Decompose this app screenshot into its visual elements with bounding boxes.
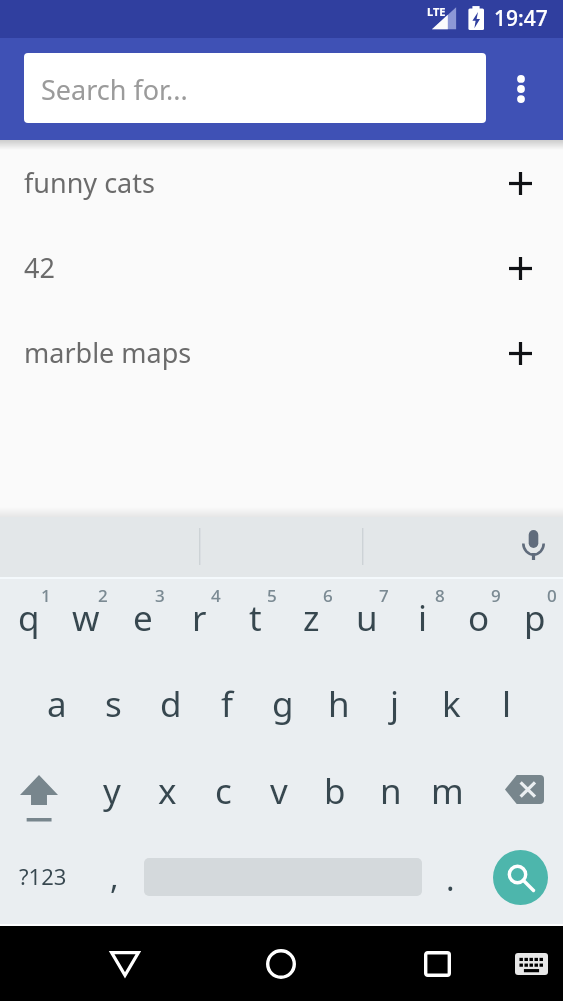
button[interactable]: Switch keyboard	[500, 926, 563, 1001]
staticText: u	[356, 594, 378, 642]
button[interactable]: 1	[0, 577, 57, 664]
button[interactable]: s	[85, 664, 142, 751]
button[interactable]: 42	[0, 225, 563, 310]
button[interactable]: Back	[80, 926, 170, 1001]
button[interactable]: .	[422, 839, 478, 926]
staticText: 0	[547, 584, 557, 607]
staticText: a	[47, 680, 67, 728]
button[interactable]: 3	[114, 577, 171, 664]
staticText: s	[105, 680, 122, 728]
staticText: w	[72, 594, 100, 642]
staticText: b	[324, 767, 346, 815]
button[interactable]: d	[142, 664, 199, 751]
staticText: ,	[110, 855, 119, 899]
button[interactable]: n	[363, 751, 419, 838]
button[interactable]: More options	[478, 38, 563, 140]
button[interactable]: l	[479, 664, 535, 751]
staticText: x	[158, 767, 177, 815]
button[interactable]: Shift	[0, 751, 84, 838]
button[interactable]: Add funny cats to search field	[477, 140, 563, 225]
staticText: LTE	[427, 4, 446, 19]
staticText: z	[303, 594, 320, 642]
staticText: d	[160, 680, 182, 728]
staticText: o	[468, 594, 490, 642]
button[interactable]: a	[28, 664, 85, 751]
staticText: 9	[491, 584, 501, 607]
staticText: p	[524, 594, 546, 642]
button[interactable]: Backspace	[475, 751, 563, 838]
button[interactable]: j	[367, 664, 423, 751]
button[interactable]: Search	[478, 839, 563, 926]
button[interactable]: v	[251, 751, 307, 838]
staticText: f	[221, 680, 234, 728]
button[interactable]: Space	[142, 839, 422, 926]
staticText: 2	[98, 584, 108, 607]
staticText: t	[249, 594, 262, 642]
staticText: .	[446, 857, 455, 901]
staticText: 8	[435, 584, 445, 607]
staticText: funny cats	[24, 164, 155, 201]
button[interactable]: funny cats	[0, 140, 563, 225]
button[interactable]: 0	[507, 577, 563, 664]
staticText: marble maps	[24, 334, 192, 371]
staticText: l	[502, 680, 512, 728]
button[interactable]: y	[84, 751, 139, 838]
button[interactable]: Add 42 to search field	[477, 225, 563, 310]
button[interactable]: k	[423, 664, 479, 751]
staticText: Search for...	[41, 71, 188, 108]
button[interactable]: 6	[283, 577, 339, 664]
staticText: k	[442, 680, 461, 728]
button[interactable]: h	[311, 664, 367, 751]
button[interactable]: Recent apps	[392, 926, 482, 1001]
button[interactable]: Home	[236, 926, 326, 1001]
staticText: 4	[211, 584, 221, 607]
button[interactable]: x	[139, 751, 195, 838]
staticText: 42	[24, 249, 55, 286]
button[interactable]: m	[419, 751, 475, 838]
staticText: 5	[267, 584, 277, 607]
button[interactable]: ,	[86, 839, 142, 926]
button[interactable]: Search for...	[24, 53, 486, 123]
button[interactable]: ?123	[0, 839, 86, 926]
staticText: 6	[323, 584, 333, 607]
staticText: i	[418, 594, 428, 642]
button[interactable]: marble maps	[0, 310, 563, 395]
button[interactable]: 4	[171, 577, 227, 664]
staticText: v	[270, 767, 288, 815]
staticText: h	[328, 680, 350, 728]
button[interactable]: 9	[451, 577, 507, 664]
staticText: g	[272, 680, 294, 728]
staticText: 3	[155, 584, 165, 607]
staticText: j	[390, 680, 400, 728]
button[interactable]: g	[255, 664, 311, 751]
staticText: n	[380, 767, 402, 815]
button[interactable]: b	[307, 751, 363, 838]
button[interactable]: Add marble maps to search field	[477, 310, 563, 395]
staticText: 1	[41, 584, 51, 607]
staticText: e	[133, 594, 153, 642]
button[interactable]: 8	[395, 577, 451, 664]
button[interactable]: f	[199, 664, 255, 751]
staticText: q	[18, 594, 40, 642]
staticText: r	[192, 594, 207, 642]
button[interactable]: Voice input	[505, 517, 563, 577]
staticText: c	[215, 767, 232, 815]
button[interactable]: 2	[57, 577, 114, 664]
button[interactable]: 5	[227, 577, 283, 664]
staticText: ?123	[19, 861, 67, 891]
staticText: m	[431, 767, 464, 815]
button[interactable]: c	[195, 751, 251, 838]
staticText: 7	[379, 584, 389, 607]
button[interactable]: 7	[339, 577, 395, 664]
staticText: y	[103, 767, 121, 815]
staticText: 19:47	[494, 4, 548, 33]
